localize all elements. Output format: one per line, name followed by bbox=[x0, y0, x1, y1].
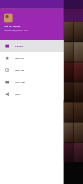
button[interactable]: Favorites bbox=[0, 52, 63, 64]
staticText: Gallery bbox=[15, 44, 23, 48]
staticText: hot4kselfies@gmail.com bbox=[4, 29, 28, 32]
staticText: More Apps bbox=[15, 81, 25, 84]
button[interactable]: More Apps bbox=[0, 76, 63, 88]
staticText: Hot 4K Selfies bbox=[4, 24, 20, 28]
button[interactable]: Gallery bbox=[0, 40, 63, 52]
staticText: Share bbox=[15, 93, 20, 96]
button[interactable]: Share bbox=[0, 88, 63, 100]
button[interactable]: About App bbox=[0, 64, 63, 76]
staticText: Favorites bbox=[15, 56, 24, 60]
staticText: About App bbox=[15, 69, 24, 72]
